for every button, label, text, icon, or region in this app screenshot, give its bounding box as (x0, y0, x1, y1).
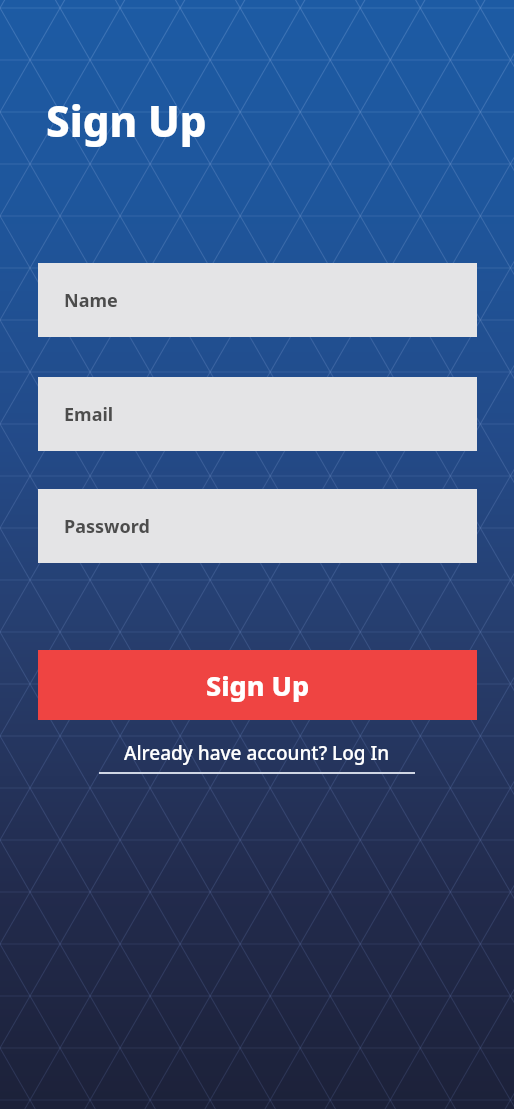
staticText: Email (64, 402, 114, 427)
button[interactable]: Password (38, 489, 477, 563)
button[interactable]: Already have account? Log In (77, 740, 437, 784)
staticText: Already have account? Log In (124, 740, 390, 766)
button[interactable]: Email (38, 377, 477, 451)
staticText: Name (64, 288, 118, 313)
staticText: Sign Up (46, 92, 207, 149)
button[interactable]: Name (38, 263, 477, 337)
staticText: Sign Up (206, 667, 310, 704)
staticText: Password (64, 514, 150, 539)
button[interactable]: Sign Up (38, 650, 477, 720)
